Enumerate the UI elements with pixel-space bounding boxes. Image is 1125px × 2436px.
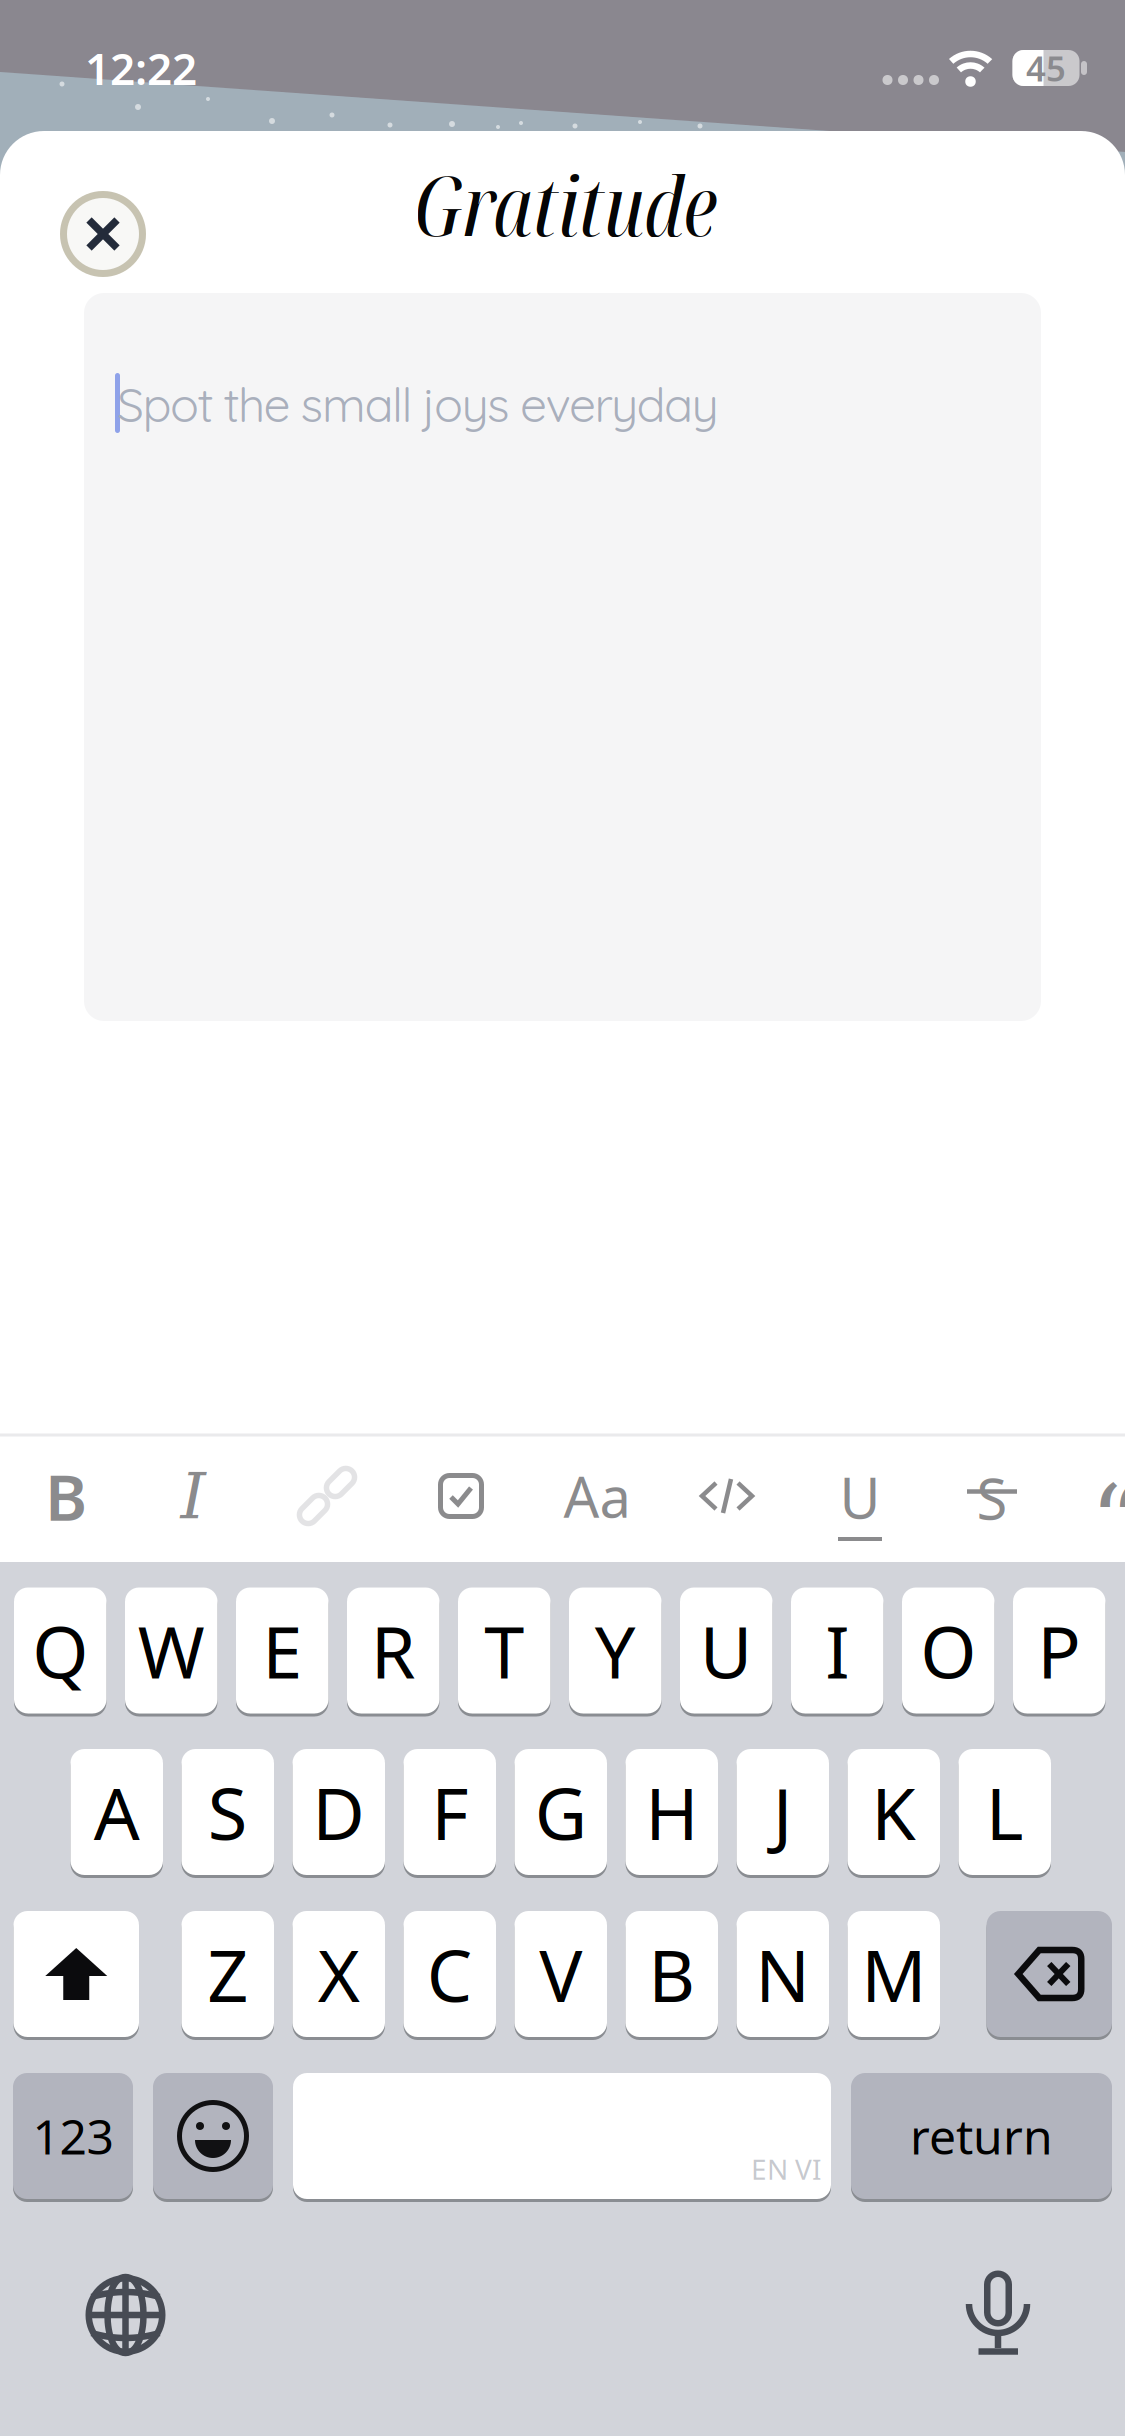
button[interactable]: R: [347, 1587, 439, 1713]
button[interactable]: K: [847, 1749, 940, 1875]
button[interactable]: B: [625, 1911, 718, 2037]
staticText: 45: [1026, 45, 1066, 91]
button[interactable]: M: [847, 1911, 940, 2037]
staticText: O: [920, 1603, 976, 1698]
button[interactable]: 123: [13, 2073, 133, 2199]
staticText: return: [910, 2104, 1053, 2168]
staticText: B: [45, 1453, 87, 1538]
button[interactable]: [13, 1911, 139, 2037]
staticText: Aa: [563, 1459, 630, 1533]
staticText: G: [535, 1764, 587, 1860]
button[interactable]: Q: [14, 1587, 106, 1713]
staticText: “: [1090, 1463, 1125, 1581]
button[interactable]: return: [851, 2073, 1112, 2199]
button[interactable]: [60, 191, 146, 277]
staticText: W: [138, 1603, 205, 1698]
button[interactable]: U: [680, 1587, 772, 1713]
staticText: Gratitude: [413, 148, 716, 260]
button[interactable]: P: [1013, 1587, 1105, 1713]
button[interactable]: J: [736, 1749, 829, 1875]
button[interactable]: X: [292, 1911, 385, 2037]
staticText: I: [180, 1459, 205, 1533]
button[interactable]: N: [736, 1911, 829, 2037]
staticText: V: [539, 1926, 582, 2022]
button[interactable]: H: [625, 1749, 718, 1875]
button[interactable]: E: [236, 1587, 328, 1713]
button[interactable]: [411, 1446, 511, 1546]
staticText: X: [318, 1926, 360, 2022]
button[interactable]: I: [143, 1446, 243, 1546]
button[interactable]: Y: [569, 1587, 661, 1713]
staticText: J: [773, 1764, 793, 1860]
staticText: S: [976, 1461, 1007, 1535]
button[interactable]: O: [902, 1587, 994, 1713]
staticText: EN VI: [751, 2150, 821, 2188]
button[interactable]: [986, 1911, 1112, 2037]
staticText: 123: [32, 2104, 113, 2168]
staticText: Q: [32, 1603, 88, 1698]
staticText: K: [871, 1764, 916, 1860]
staticText: C: [427, 1926, 473, 2022]
button[interactable]: U: [810, 1446, 910, 1546]
staticText: E: [262, 1603, 302, 1698]
button[interactable]: [943, 2257, 1053, 2367]
button[interactable]: S: [181, 1749, 274, 1875]
button[interactable]: Z: [181, 1911, 274, 2037]
staticText: T: [484, 1603, 524, 1698]
button[interactable]: S: [942, 1446, 1042, 1546]
staticText: D: [312, 1764, 365, 1860]
button[interactable]: Aa: [547, 1446, 647, 1546]
staticText: F: [431, 1764, 468, 1860]
button[interactable]: T: [458, 1587, 550, 1713]
staticText: P: [1037, 1603, 1081, 1698]
button[interactable]: D: [292, 1749, 385, 1875]
button[interactable]: V: [514, 1911, 607, 2037]
staticText: Z: [207, 1926, 248, 2022]
button[interactable]: A: [70, 1749, 163, 1875]
button[interactable]: [153, 2073, 273, 2199]
staticText: M: [861, 1926, 926, 2022]
button[interactable]: C: [403, 1911, 496, 2037]
button[interactable]: [84, 293, 1041, 1021]
button[interactable]: W: [125, 1587, 217, 1713]
staticText: Spot the small joys everyday: [117, 374, 718, 434]
staticText: U: [700, 1603, 753, 1698]
button[interactable]: [277, 1446, 377, 1546]
button[interactable]: B: [16, 1446, 116, 1546]
staticText: H: [645, 1764, 698, 1860]
staticText: N: [755, 1926, 810, 2022]
button[interactable]: [70, 2260, 180, 2370]
button[interactable]: [677, 1446, 777, 1546]
staticText: 12:22: [85, 39, 197, 97]
staticText: B: [648, 1926, 695, 2022]
button[interactable]: “: [1076, 1472, 1125, 1572]
button[interactable]: G: [514, 1749, 607, 1875]
button[interactable]: F: [403, 1749, 496, 1875]
staticText: Y: [595, 1603, 636, 1698]
staticText: S: [208, 1764, 248, 1860]
button[interactable]: EN VI: [293, 2073, 831, 2199]
button[interactable]: I: [791, 1587, 883, 1713]
button[interactable]: L: [958, 1749, 1051, 1875]
staticText: A: [94, 1764, 140, 1860]
staticText: L: [986, 1764, 1024, 1860]
staticText: U: [839, 1460, 880, 1534]
staticText: R: [371, 1603, 416, 1698]
staticText: I: [825, 1603, 849, 1698]
